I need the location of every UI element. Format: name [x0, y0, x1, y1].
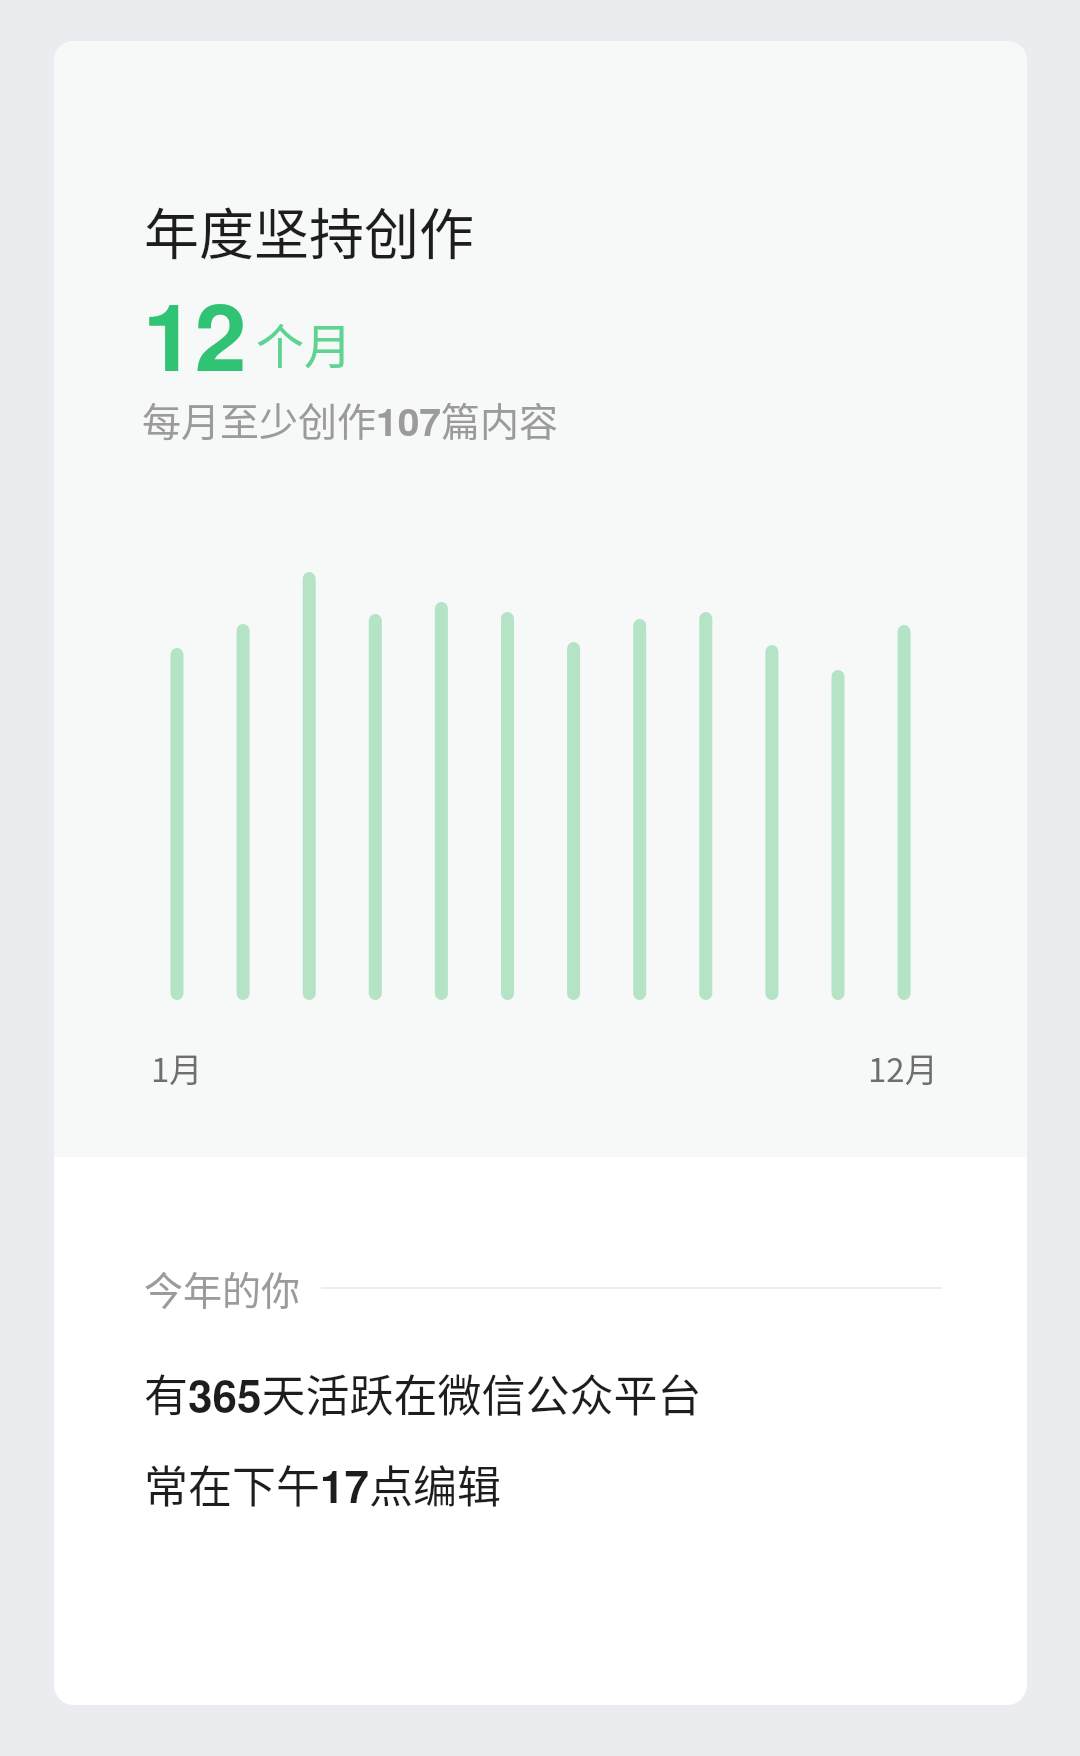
other: 每月创作数量柱状图: [164, 541, 914, 1011]
staticText: 个月: [256, 308, 353, 378]
staticText: 12: [143, 266, 247, 399]
staticText: 今年的你: [144, 1260, 301, 1316]
staticText: 常在下午17点编辑: [144, 1452, 501, 1517]
staticText: 12月: [868, 1044, 938, 1092]
staticText: 1月: [151, 1044, 203, 1092]
staticText: 有365天活跃在微信公众平台: [144, 1361, 702, 1426]
staticText: 每月至少创作107篇内容: [142, 391, 559, 448]
staticText: 年度坚持创作: [144, 190, 475, 270]
button[interactable]: 年度坚持创作: [54, 41, 1027, 1705]
